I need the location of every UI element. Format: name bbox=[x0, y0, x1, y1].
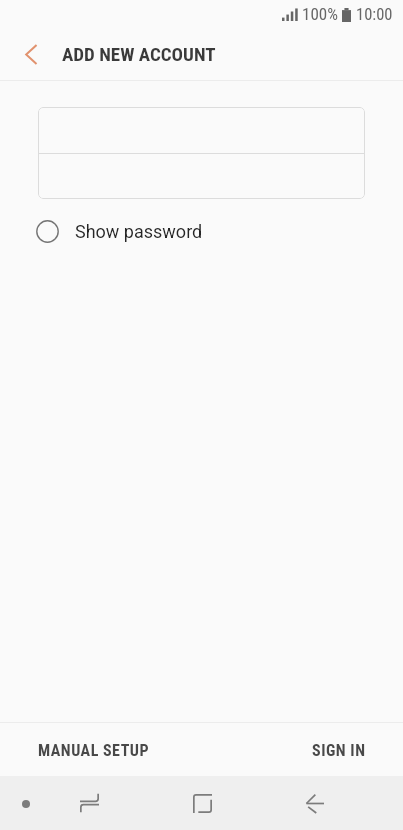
button[interactable] bbox=[38, 154, 365, 199]
button[interactable]: SIGN IN bbox=[275, 723, 403, 776]
staticText: ADD NEW ACCOUNT bbox=[62, 43, 216, 65]
button[interactable]: Recent apps bbox=[63, 777, 115, 829]
staticText: 10:00 bbox=[356, 5, 393, 24]
button[interactable]: Home bbox=[176, 777, 228, 829]
staticText: 100% bbox=[302, 4, 338, 24]
button[interactable]: Back bbox=[289, 777, 341, 829]
button[interactable]: Hide keyboard bbox=[0, 776, 51, 830]
button[interactable]: Navigate up bbox=[5, 28, 57, 80]
button[interactable] bbox=[38, 107, 365, 153]
button[interactable]: Show password bbox=[0, 204, 403, 258]
staticText: MANUAL SETUP bbox=[38, 741, 150, 760]
button[interactable]: MANUAL SETUP bbox=[0, 723, 188, 776]
staticText: SIGN IN bbox=[312, 741, 366, 760]
staticText: Show password bbox=[75, 221, 203, 242]
